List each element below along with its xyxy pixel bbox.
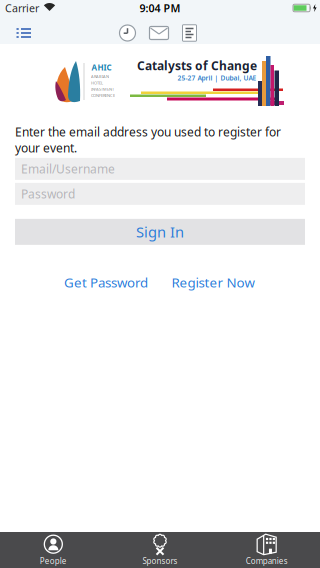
staticText: 9:04 PM (139, 1, 180, 15)
button[interactable]: Notes (180, 23, 198, 43)
button[interactable]: People (0, 532, 107, 568)
button[interactable]: Sign In (15, 219, 305, 245)
staticText: AHIC (91, 62, 111, 73)
button[interactable]: Menu (10, 22, 37, 44)
staticText: Carrier (5, 1, 39, 15)
staticText: Email/Username (21, 161, 115, 177)
staticText: HOTEL (91, 80, 103, 85)
button[interactable]: Recent (117, 23, 137, 43)
staticText: People (40, 556, 67, 566)
staticText: Catalysts of Change (137, 57, 257, 73)
staticText: ARABIAN (91, 74, 109, 79)
staticText: Password (21, 186, 75, 202)
staticText: 25-27 April | Dubai, UAE (177, 74, 256, 82)
button[interactable]: Password (15, 183, 305, 205)
button[interactable]: Companies (213, 532, 320, 568)
staticText: Sponsors (142, 556, 177, 566)
button[interactable]: Register Now (171, 273, 254, 291)
button[interactable]: Get Password (64, 273, 148, 291)
staticText: CONFERENCE (91, 93, 115, 98)
button[interactable]: Email (147, 24, 170, 41)
button[interactable]: Sponsors (107, 532, 213, 568)
staticText: INVESTMENT (91, 86, 114, 92)
button[interactable]: Email/Username (15, 158, 305, 180)
staticText: Enter the email address you used to regi… (15, 124, 281, 156)
staticText: Register Now (171, 273, 254, 291)
staticText: Get Password (64, 273, 148, 291)
staticText: Sign In (136, 222, 184, 242)
staticText: Companies (246, 556, 288, 566)
